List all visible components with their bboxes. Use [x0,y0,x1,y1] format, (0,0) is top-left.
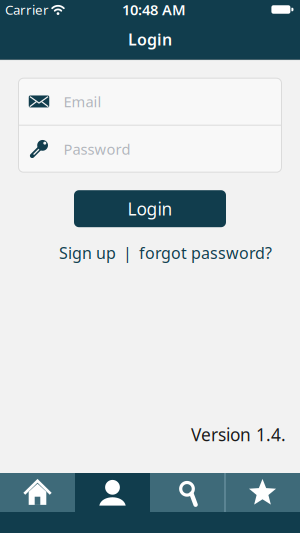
staticText: Login [128,29,172,50]
staticText: 10:48 AM [122,0,186,19]
staticText: Sign up [59,242,116,263]
button[interactable] [75,473,150,512]
staticText: forgot password? [139,242,272,263]
staticText: Carrier [5,1,49,18]
staticText: Password [63,139,130,159]
staticText: Email [63,92,101,111]
button[interactable] [225,473,300,512]
button[interactable]: forgot password? [139,242,272,263]
button[interactable] [150,473,225,512]
button[interactable] [0,473,75,512]
button[interactable]: Sign up [59,242,116,263]
button[interactable]: Password [18,126,281,172]
staticText: | [123,242,132,263]
staticText: Version 1.4. [191,423,286,446]
button[interactable]: Login [74,190,226,227]
button[interactable] [18,78,281,125]
staticText: Login [127,197,172,220]
